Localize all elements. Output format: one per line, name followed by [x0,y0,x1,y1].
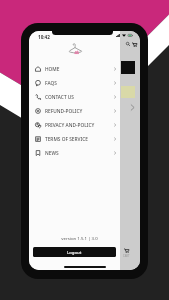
button[interactable]: REFUND-POLICY [29,104,120,118]
button[interactable]: CONTACT US [29,90,120,104]
staticText: version 1.5.1 | 3.0 [34,235,125,241]
button[interactable]: Search [124,40,132,48]
staticText: TERMS OF SERVICE [45,136,88,143]
staticText: Logout [67,249,82,255]
button[interactable]: HOME [29,62,120,76]
button[interactable]: Cart [130,40,138,48]
staticText: NEWS [45,150,59,157]
button[interactable]: NEWS [29,146,120,160]
staticText: 10:42 [38,34,50,40]
staticText: HOME [45,66,60,73]
staticText: PRIVACY AND-POLICY [45,122,95,129]
button[interactable]: TERMS OF SERVICE [29,132,120,146]
button[interactable]: FAQS [29,76,120,90]
staticText: CONTACT US [45,94,75,101]
button[interactable]: PRIVACY AND-POLICY [29,118,120,132]
button[interactable]: Logout [33,247,116,257]
staticText: CART [123,254,130,258]
staticText: REFUND-POLICY [45,108,83,115]
staticText: FAQS [45,80,57,87]
